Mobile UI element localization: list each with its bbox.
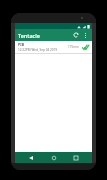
button[interactable]: Synced	[81, 43, 89, 51]
button[interactable]: Refresh	[71, 30, 81, 40]
staticText: 175mm	[68, 45, 79, 49]
staticText: Tentacle	[18, 32, 40, 39]
staticText: PIB	[18, 42, 25, 47]
staticText: 12:32PM Wed, Sep 04 2019	[18, 48, 58, 52]
button[interactable]: Back	[24, 152, 38, 163]
button[interactable]: Home	[47, 152, 61, 163]
button[interactable]: Recent apps	[69, 152, 83, 163]
button[interactable]: More options	[82, 30, 89, 40]
button[interactable]: PIB	[15, 41, 92, 53]
